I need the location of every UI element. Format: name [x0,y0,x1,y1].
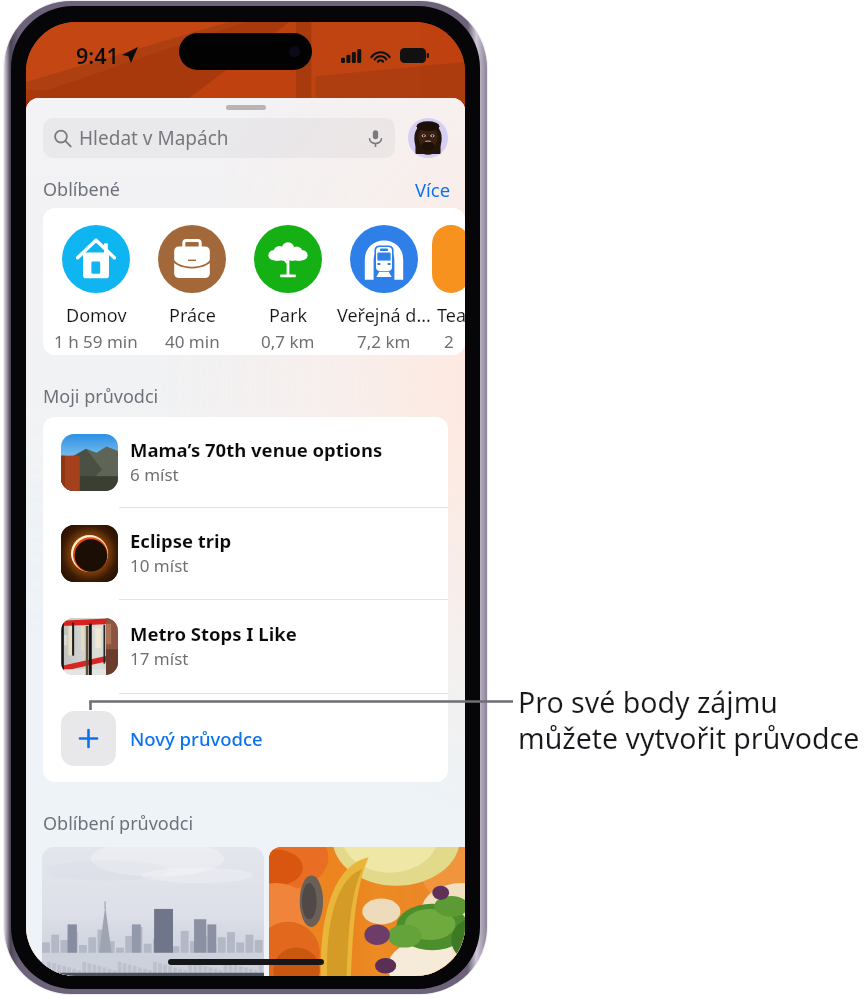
staticText: Metro Stops I Like [130,621,297,646]
button[interactable]: Tea [432,225,465,353]
button[interactable]: Profile [408,118,448,158]
staticText: 1 h 59 min [54,330,138,353]
staticText: 17 míst [130,647,189,670]
staticText: 7,2 km [357,330,411,353]
staticText: 0,7 km [261,330,315,353]
staticText: Pro své body zájmu [518,683,778,722]
button[interactable]: Eclipse trip [43,508,448,599]
staticText: můžete vytvořit průvodce [518,719,860,758]
staticText: Moji průvodci [43,384,159,409]
button[interactable]: Veřejná d... [336,225,432,353]
button[interactable]: Metro Stops I Like [43,600,448,693]
staticText: Hledat v Mapách [79,125,229,151]
staticText: 2 [444,330,459,353]
staticText: Mama’s 70th venue options [130,437,383,462]
staticText: 10 míst [130,554,189,577]
staticText: Eclipse trip [130,528,232,553]
staticText: 40 min [165,330,220,353]
button[interactable]: Práce [144,225,240,353]
staticText: Práce [169,303,216,328]
staticText: Veřejná d... [337,303,431,328]
staticText: Tea [437,303,465,328]
staticText: Park [269,303,308,328]
button[interactable]: Nový průvodce [43,694,448,782]
button[interactable]: Domov [48,225,144,353]
staticText: Nový průvodce [130,726,263,751]
staticText: Domov [66,303,127,328]
button[interactable]: Park [240,225,336,353]
button[interactable] [269,847,465,976]
staticText: Oblíbené [43,177,120,202]
button[interactable] [42,847,264,976]
button[interactable]: Více [415,177,451,202]
staticText: Více [415,177,451,202]
staticText: 6 míst [130,463,179,486]
staticText: Oblíbení průvodci [43,811,194,836]
staticText: 9:41 [76,41,119,70]
button[interactable]: Mama’s 70th venue options [43,417,448,507]
button[interactable]: Hledat v Mapách [43,118,395,158]
